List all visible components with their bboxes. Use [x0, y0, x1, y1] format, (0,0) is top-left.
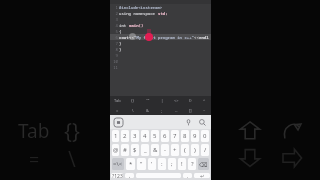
button[interactable]: &: [140, 105, 155, 115]
staticText: 6: [163, 132, 167, 140]
button[interactable]: ": [137, 158, 146, 170]
staticText: $: [133, 146, 137, 154]
staticText: =\<: [113, 160, 123, 168]
staticText: ^: [203, 98, 206, 103]
button[interactable]: #: [121, 144, 129, 156]
button[interactable]: +: [171, 144, 179, 156]
button[interactable]: 3: [131, 130, 139, 142]
button[interactable]: Voice input: [184, 118, 193, 127]
button[interactable]: ~: [197, 105, 211, 115]
staticText: 10: [110, 59, 118, 64]
button[interactable]: 0: [201, 130, 209, 142]
button[interactable]: 5: [151, 130, 159, 142]
staticText: /: [204, 146, 207, 154]
button[interactable]: 9: [191, 130, 199, 142]
staticText: _: [144, 146, 147, 154]
staticText: std;: [158, 11, 168, 16]
button[interactable]: ?: [188, 158, 196, 170]
button[interactable]: 8: [181, 130, 189, 142]
button[interactable]: Move down: [235, 143, 265, 173]
staticText: ): [194, 146, 196, 154]
staticText: (): [189, 98, 192, 103]
staticText: 7: [110, 41, 118, 46]
button[interactable]: 4: [141, 130, 149, 142]
button[interactable]: Redo: [277, 115, 307, 145]
staticText: Tab: [18, 118, 50, 144]
button[interactable]: @: [112, 144, 119, 156]
button[interactable]: ,: [125, 173, 134, 178]
staticText: []: [189, 108, 192, 113]
staticText: ,: [129, 173, 131, 178]
staticText: {}: [64, 117, 80, 145]
staticText: using namespace: [119, 11, 158, 16]
button[interactable]: Move right: [277, 143, 307, 173]
button[interactable]: ;: [168, 158, 176, 170]
staticText: 1: [114, 132, 118, 140]
button[interactable]: Tab key: [10, 118, 58, 144]
button[interactable]: _: [141, 144, 149, 156]
button[interactable]: 7: [171, 130, 179, 142]
staticText: <>: [174, 98, 179, 103]
button[interactable]: -: [161, 144, 169, 156]
button[interactable]: Keyboard options: [114, 118, 123, 127]
staticText: "My first program in c++": [134, 35, 194, 40]
button[interactable]: ⌫: [198, 158, 209, 170]
staticText: *: [129, 160, 133, 168]
button[interactable]: Move up: [235, 115, 265, 145]
button[interactable]: .: [183, 173, 192, 178]
button[interactable]: $: [131, 144, 139, 156]
staticText: endl: [199, 35, 209, 40]
button[interactable]: --: [169, 105, 183, 115]
button[interactable]: (): [183, 96, 197, 105]
staticText: :: [161, 160, 163, 168]
button[interactable]: 1: [112, 130, 119, 142]
staticText: ': [151, 160, 153, 168]
button[interactable]: &: [151, 144, 159, 156]
button[interactable]: {}: [125, 96, 140, 105]
button[interactable]: Search: [198, 118, 207, 127]
staticText: 4: [110, 23, 118, 28]
button[interactable]: ↵: [194, 173, 210, 178]
button[interactable]: ;: [155, 105, 169, 115]
button[interactable]: <>: [169, 96, 183, 105]
button[interactable]: []: [183, 105, 197, 115]
staticText: &: [153, 146, 158, 154]
staticText: 4: [143, 132, 147, 140]
button[interactable]: =: [110, 105, 125, 115]
button[interactable]: ^: [197, 96, 211, 105]
staticText: 1: [110, 5, 118, 10]
button[interactable]: /: [201, 144, 209, 156]
staticText: #include<iostream>: [119, 5, 163, 10]
staticText: ;: [171, 160, 173, 168]
staticText: ;: [161, 108, 163, 113]
button[interactable]: (: [181, 144, 189, 156]
button[interactable]: Backslash key: [55, 145, 89, 173]
staticText: ⌫: [199, 161, 208, 168]
button[interactable]: ': [148, 158, 156, 170]
staticText: cout: [119, 35, 129, 40]
button[interactable]: =\<: [112, 158, 124, 170]
staticText: 5: [110, 29, 118, 34]
button[interactable]: Tab: [110, 96, 125, 105]
staticText: |: [161, 98, 164, 103]
button[interactable]: ): [191, 144, 199, 156]
button[interactable]: Braces key: [55, 117, 89, 145]
button[interactable]: ?123: [111, 173, 123, 178]
staticText: 2: [123, 132, 127, 140]
button[interactable]: :: [158, 158, 166, 170]
button[interactable]: 2: [121, 130, 129, 142]
staticText: .: [187, 173, 189, 178]
staticText: 5: [153, 132, 157, 140]
button[interactable]: *: [126, 158, 135, 170]
staticText: #: [123, 146, 127, 154]
staticText: int: [119, 23, 129, 28]
staticText: ": [140, 160, 143, 168]
button[interactable]: |: [155, 96, 169, 105]
staticText: }: [119, 47, 122, 52]
button[interactable]: !: [178, 158, 186, 170]
button[interactable]: 6: [161, 130, 169, 142]
button[interactable]: \: [125, 105, 140, 115]
button[interactable]: "": [140, 96, 155, 105]
